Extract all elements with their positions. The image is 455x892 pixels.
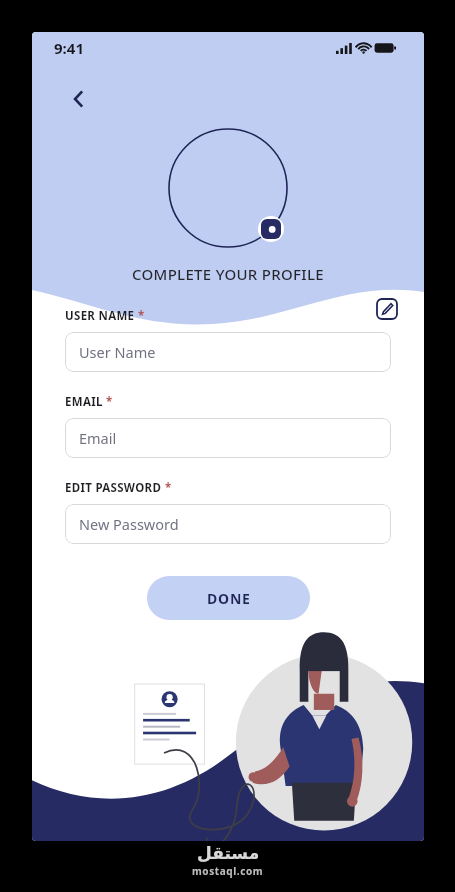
- staticText: *: [138, 308, 145, 324]
- staticText: *: [106, 394, 113, 410]
- staticText: مستقل: [197, 843, 260, 863]
- button[interactable]: Back: [58, 78, 100, 120]
- button[interactable]: New Password: [65, 504, 391, 544]
- button[interactable]: Change profile photo: [168, 128, 288, 248]
- staticText: New Password: [79, 514, 179, 534]
- staticText: Email: [79, 428, 117, 448]
- staticText: COMPLETE YOUR PROFILE: [132, 264, 324, 284]
- staticText: EDIT PASSWORD: [65, 480, 162, 496]
- staticText: EMAIL: [65, 394, 103, 410]
- staticText: DONE: [207, 589, 251, 608]
- button[interactable]: DONE: [147, 576, 310, 620]
- staticText: USER NAME: [65, 308, 135, 324]
- button[interactable]: User Name: [65, 332, 391, 372]
- staticText: mostaql.com: [192, 864, 264, 878]
- button[interactable]: Email: [65, 418, 391, 458]
- staticText: User Name: [79, 342, 156, 362]
- staticText: *: [165, 480, 172, 496]
- staticText: 9:41: [54, 38, 84, 58]
- button[interactable]: Edit profile: [370, 292, 404, 326]
